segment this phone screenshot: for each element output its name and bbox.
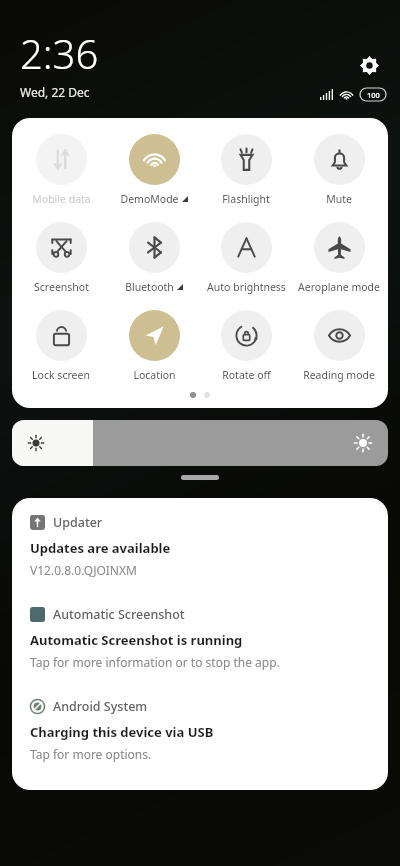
button[interactable]: Updater: [12, 498, 388, 590]
staticText: Charging this device via USB: [30, 723, 214, 741]
button[interactable]: Brightness: [12, 420, 388, 466]
button[interactable]: Screenshot: [18, 220, 104, 296]
staticText: Aeroplane mode: [298, 280, 380, 294]
button[interactable]: Lock screen: [18, 308, 104, 384]
staticText: Lock screen: [32, 368, 90, 382]
button[interactable]: Auto brightness: [203, 220, 289, 296]
staticText: Tap for more options.: [30, 746, 152, 762]
staticText: Auto brightness: [207, 280, 286, 294]
button[interactable]: Flashlight: [203, 132, 289, 208]
staticText: Automatic Screenshot: [53, 606, 185, 623]
button[interactable]: Mobile data: [18, 132, 104, 208]
staticText: 100: [367, 90, 380, 100]
staticText: Wed, 22 Dec: [20, 84, 90, 100]
staticText: DemoMode: [120, 192, 179, 206]
button[interactable]: Bluetooth: [111, 220, 197, 296]
button[interactable]: Rotate off: [203, 308, 289, 384]
staticText: Automatic Screenshot is running: [30, 631, 243, 649]
staticText: Android System: [53, 698, 148, 715]
staticText: Mute: [326, 192, 352, 206]
staticText: Updates are available: [30, 539, 171, 557]
staticText: Updater: [53, 514, 103, 531]
staticText: Rotate off: [222, 368, 271, 382]
button[interactable]: Location: [111, 308, 197, 384]
staticText: Tap for more information or to stop the …: [30, 654, 280, 670]
staticText: Bluetooth: [125, 280, 174, 294]
staticText: Flashlight: [222, 192, 270, 206]
button[interactable]: Reading mode: [296, 308, 382, 384]
staticText: V12.0.8.0.QJOINXM: [30, 562, 137, 578]
button[interactable]: DemoMode: [111, 132, 197, 208]
staticText: 2:36: [20, 26, 99, 80]
button[interactable]: Settings: [350, 46, 388, 84]
button[interactable]: Aeroplane mode: [296, 220, 382, 296]
button[interactable]: Android System: [12, 682, 388, 774]
staticText: Mobile data: [32, 192, 91, 206]
staticText: Reading mode: [303, 368, 375, 382]
staticText: Screenshot: [34, 280, 89, 294]
staticText: Location: [133, 368, 176, 382]
button[interactable]: Mute: [296, 132, 382, 208]
button[interactable]: Automatic Screenshot: [12, 590, 388, 682]
